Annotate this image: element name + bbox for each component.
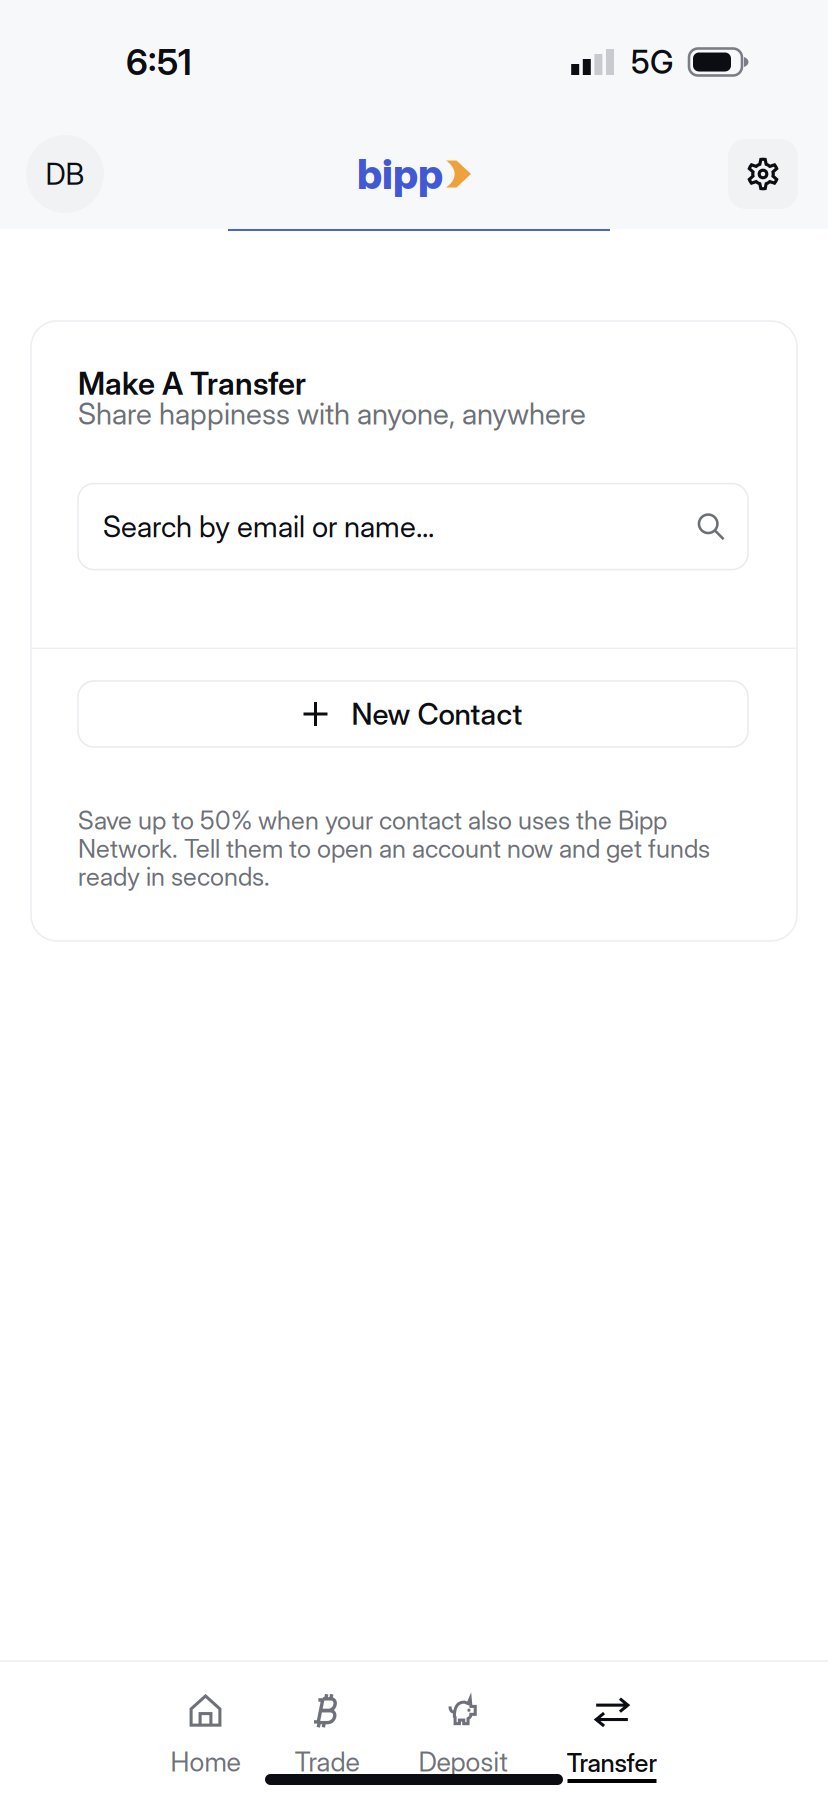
staticText: bipp: [357, 149, 443, 199]
button[interactable]: Settings: [728, 139, 798, 209]
staticText: DB: [45, 156, 84, 192]
staticText: 5G: [631, 43, 673, 81]
staticText: New Contact: [351, 696, 522, 732]
button[interactable]: Search by email or name...: [78, 484, 748, 570]
button[interactable]: Trade: [294, 1693, 359, 1783]
staticText: Transfer: [566, 1747, 657, 1778]
button[interactable]: New Contact: [78, 681, 748, 747]
staticText: Trade: [294, 1746, 359, 1778]
button[interactable]: DB: [26, 135, 104, 213]
staticText: Save up to 50% when your contact also us…: [78, 805, 710, 892]
staticText: Make A Transfer: [78, 365, 306, 402]
staticText: Deposit: [418, 1746, 507, 1778]
staticText: Share happiness with anyone, anywhere: [78, 396, 586, 432]
button[interactable]: Transfer: [566, 1694, 657, 1783]
staticText: Search by email or name...: [103, 509, 434, 544]
staticText: Home: [170, 1746, 240, 1778]
button[interactable]: Home: [170, 1693, 240, 1783]
button[interactable]: Deposit: [418, 1693, 507, 1783]
staticText: 6:51: [126, 40, 192, 84]
